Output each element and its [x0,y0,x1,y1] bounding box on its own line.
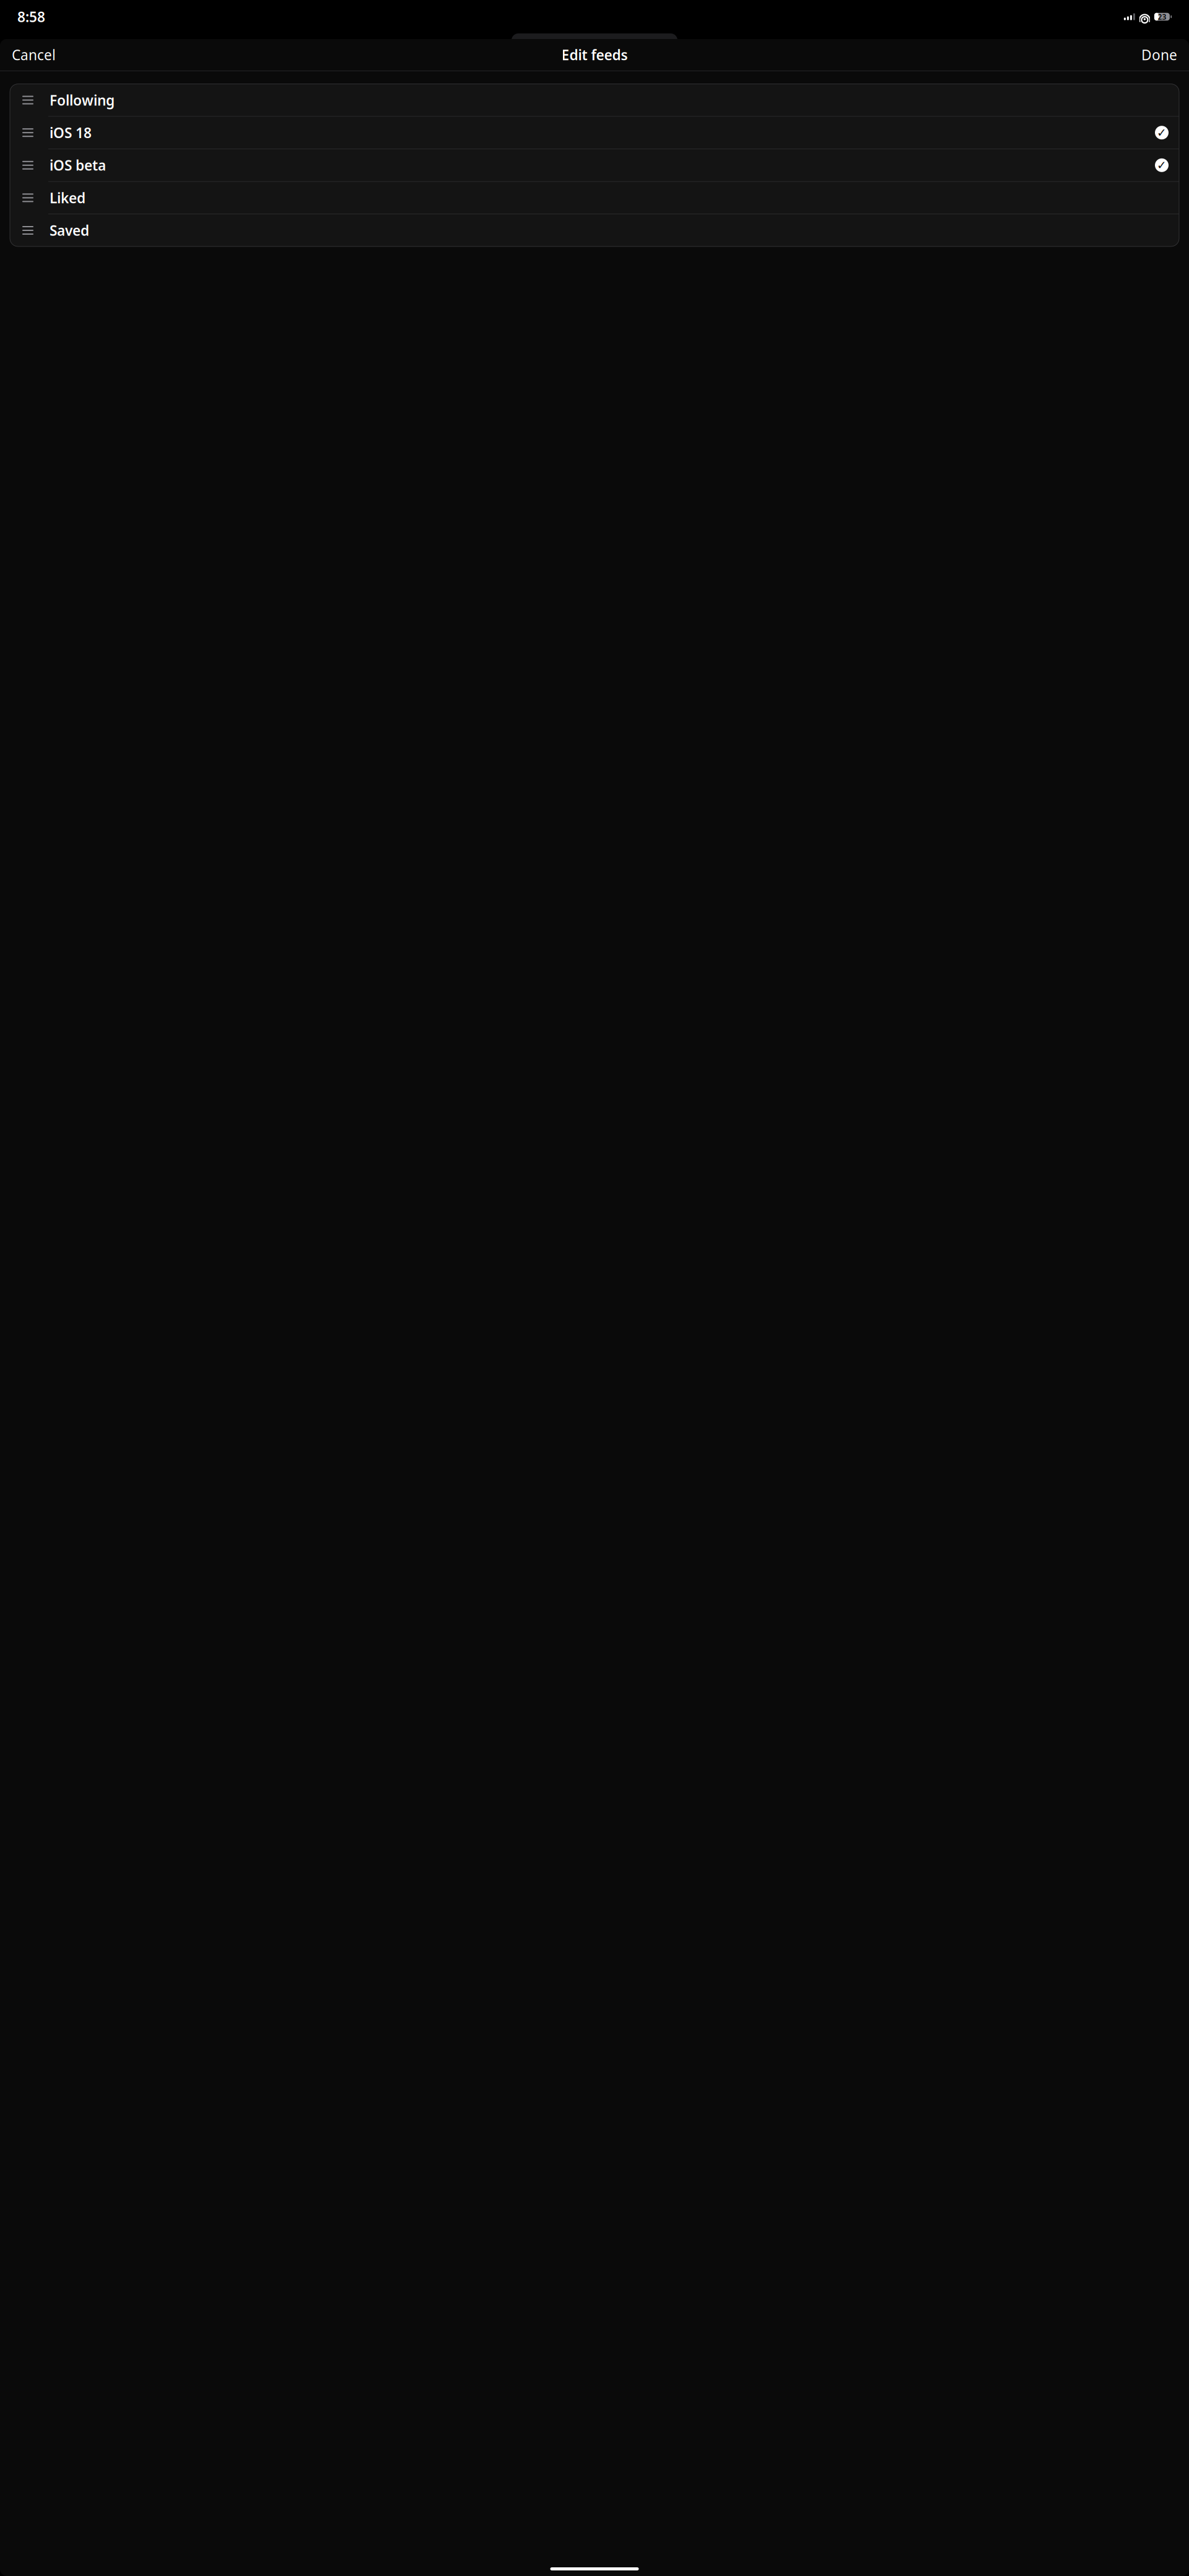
staticText: 8:58 [17,7,45,26]
staticText: Cancel [12,45,56,64]
button[interactable]: Saved [10,214,1179,246]
button[interactable]: Done [1138,40,1181,69]
staticText: ✓ [1157,159,1167,172]
button[interactable]: Cancel [8,40,59,69]
staticText: Saved [50,221,89,240]
button[interactable]: iOS 18 [10,117,1179,149]
button[interactable]: Following [10,84,1179,116]
staticText: iOS beta [50,156,106,174]
staticText: ✓ [1157,126,1167,139]
staticText: Following [50,91,115,109]
staticText: Liked [50,188,85,207]
staticText: Done [1141,45,1177,64]
button[interactable]: iOS beta [10,149,1179,181]
staticText: iOS 18 [50,123,92,142]
button[interactable]: Liked [10,182,1179,214]
staticText: Edit feeds [561,45,628,64]
staticText: 23 [1158,12,1166,22]
